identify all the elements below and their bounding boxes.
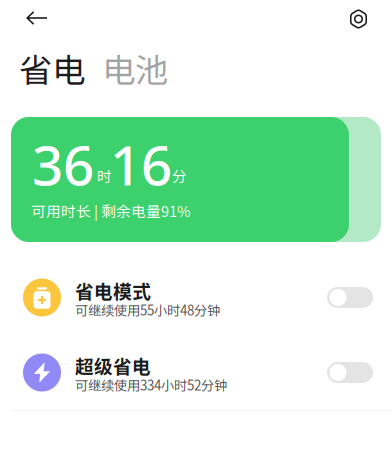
button[interactable]: 省电: [19, 44, 85, 92]
staticText: 可用时长 | 剩余电量91%: [31, 200, 191, 221]
button[interactable]: 电池: [102, 44, 168, 92]
button[interactable]: Back: [0, 0, 62, 47]
staticText: 36: [32, 127, 94, 201]
button[interactable]: Settings: [335, 2, 392, 45]
staticText: 可继续使用334小时52分钟: [75, 375, 227, 394]
staticText: 可继续使用55小时48分钟: [75, 300, 220, 319]
staticText: 时: [97, 165, 112, 186]
staticText: 超级省电: [75, 352, 151, 379]
staticText: 电池: [102, 44, 168, 92]
staticText: 16: [110, 127, 172, 201]
staticText: 分: [172, 165, 187, 186]
staticText: 省电: [19, 44, 85, 92]
staticText: 省电模式: [75, 277, 151, 304]
button[interactable]: 超级省电: [0, 335, 392, 410]
button[interactable]: 省电模式: [0, 260, 392, 335]
